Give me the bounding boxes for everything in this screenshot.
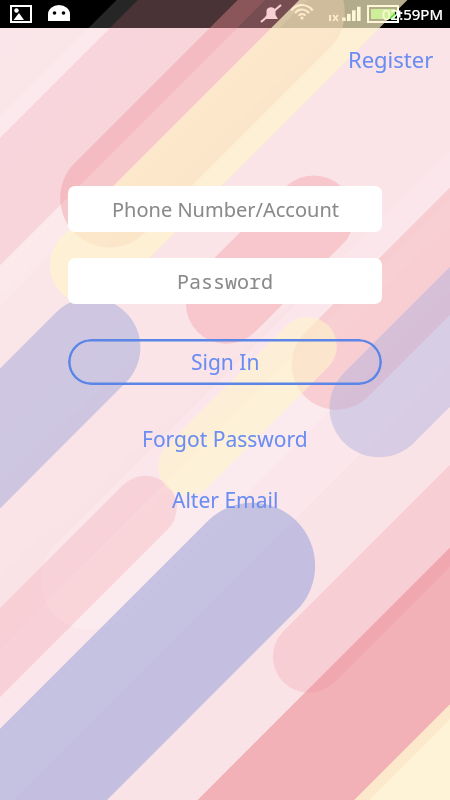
button[interactable]: Password xyxy=(68,258,382,304)
button[interactable]: Alter Email xyxy=(166,483,285,518)
staticText: Register xyxy=(348,44,434,74)
staticText: 02:59PM xyxy=(382,4,444,24)
button[interactable]: Forgot Password xyxy=(136,422,314,457)
button[interactable]: Register xyxy=(344,42,438,76)
staticText: Phone Number/Account xyxy=(112,196,339,223)
button[interactable]: Sign In xyxy=(68,339,382,385)
button[interactable]: Phone Number/Account xyxy=(68,186,382,232)
staticText: Password xyxy=(177,268,273,295)
staticText: Forgot Password xyxy=(142,425,308,454)
staticText: Alter Email xyxy=(172,486,279,515)
staticText: Sign In xyxy=(191,348,260,377)
